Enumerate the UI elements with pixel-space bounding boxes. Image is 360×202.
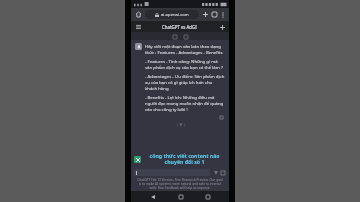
button[interactable]: New tab [201,10,210,19]
button[interactable]: Regenerate [219,169,226,176]
button[interactable]: Copy [218,114,224,120]
staticText: ChatGPT Feb 13 Version. Free Research Pr… [136,178,224,190]
button[interactable]: Home [134,10,143,19]
staticText: ai.openai.com [161,12,189,18]
staticText: · | ▼ | [174,122,186,127]
staticText: - Advantages - Ưu điểm: Sản phẩm dịch vụ… [145,73,225,91]
button[interactable]: New chat [218,23,226,31]
staticText: - Benefits - Lợi ích: Những điều mà ngườ… [145,94,225,112]
button[interactable]: Recent apps [202,191,213,202]
button[interactable]: Send [212,169,219,176]
button[interactable]: Back [147,191,158,202]
button[interactable]: Tabs [210,10,219,19]
staticText: công thức viết content nào chuyên đổi số… [143,152,226,166]
button[interactable]: Dislike [182,33,189,40]
button[interactable]: More options [219,11,226,18]
staticText: - Features - Tính năng: Những gì mà sản … [145,58,225,70]
staticText: Hãy viết một đoạn văn bản theo dạng thức… [145,43,225,55]
button[interactable]: Menu [134,23,142,31]
button[interactable] [134,169,210,176]
button[interactable]: ai.openai.com [145,10,199,19]
staticText: ChatGPT vs AdGI [162,24,197,30]
button[interactable]: Like [171,33,178,40]
button[interactable]: Hãy viết một đoạn văn bản theo dạng thức… [131,43,229,112]
button[interactable]: Home [175,191,186,202]
